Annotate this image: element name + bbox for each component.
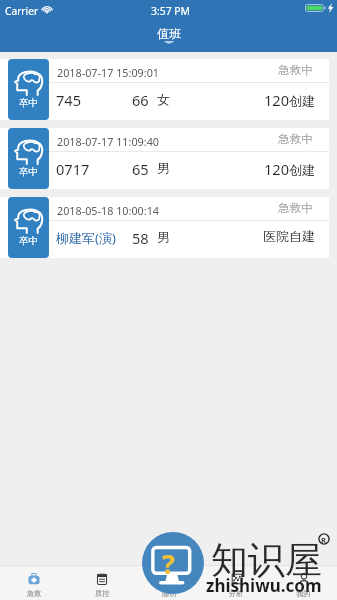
staticText: 2018-07-17 11:09:40 <box>57 134 160 149</box>
staticText: 急救中 <box>278 201 313 216</box>
staticText: 卒中 <box>19 235 39 247</box>
staticText: 急救 <box>27 589 42 598</box>
staticText: 卒中 <box>19 166 39 178</box>
staticText: 2018-07-17 15:09:01 <box>57 65 160 80</box>
button[interactable]: 质控 <box>68 566 136 600</box>
staticText: 120创建 <box>200 159 315 179</box>
button[interactable]: 我的 <box>270 566 337 600</box>
staticText: 分析 <box>229 589 244 598</box>
staticText: 柳建军(演) <box>56 229 116 247</box>
staticText: 120创建 <box>200 90 315 110</box>
staticText: 我的 <box>296 589 311 598</box>
button[interactable]: 随访 <box>136 566 203 600</box>
staticText: 66 <box>132 90 149 110</box>
staticText: 745 <box>56 90 82 110</box>
staticText: 急救中 <box>278 132 313 147</box>
staticText: 58 <box>132 228 149 248</box>
staticText: 值班 <box>157 26 181 41</box>
staticText: 65 <box>132 159 149 179</box>
staticText: 3:57 PM <box>151 4 191 18</box>
button[interactable]: 卒中 <box>0 128 329 189</box>
button[interactable]: 卒中 <box>0 59 329 120</box>
staticText: 女 <box>157 91 170 107</box>
staticText: 卒中 <box>19 97 39 109</box>
staticText: ? <box>162 545 175 582</box>
staticText: zhishiwu.com <box>206 574 322 597</box>
staticText: R <box>321 535 326 545</box>
button[interactable]: 卒中 <box>0 197 329 258</box>
button[interactable]: 急救 <box>0 566 68 600</box>
staticText: 男 <box>157 160 170 176</box>
staticText: 质控 <box>95 589 110 598</box>
staticText: 0717 <box>56 159 90 179</box>
button[interactable]: 分析 <box>203 566 270 600</box>
staticText: 知识屋 <box>211 537 322 584</box>
staticText: 随访 <box>162 589 177 598</box>
staticText: 医院自建 <box>200 228 315 244</box>
staticText: 急救中 <box>278 63 313 78</box>
staticText: Carrier <box>5 4 39 18</box>
staticText: 男 <box>157 229 170 245</box>
staticText: 2018-05-18 10:00:14 <box>57 203 160 218</box>
